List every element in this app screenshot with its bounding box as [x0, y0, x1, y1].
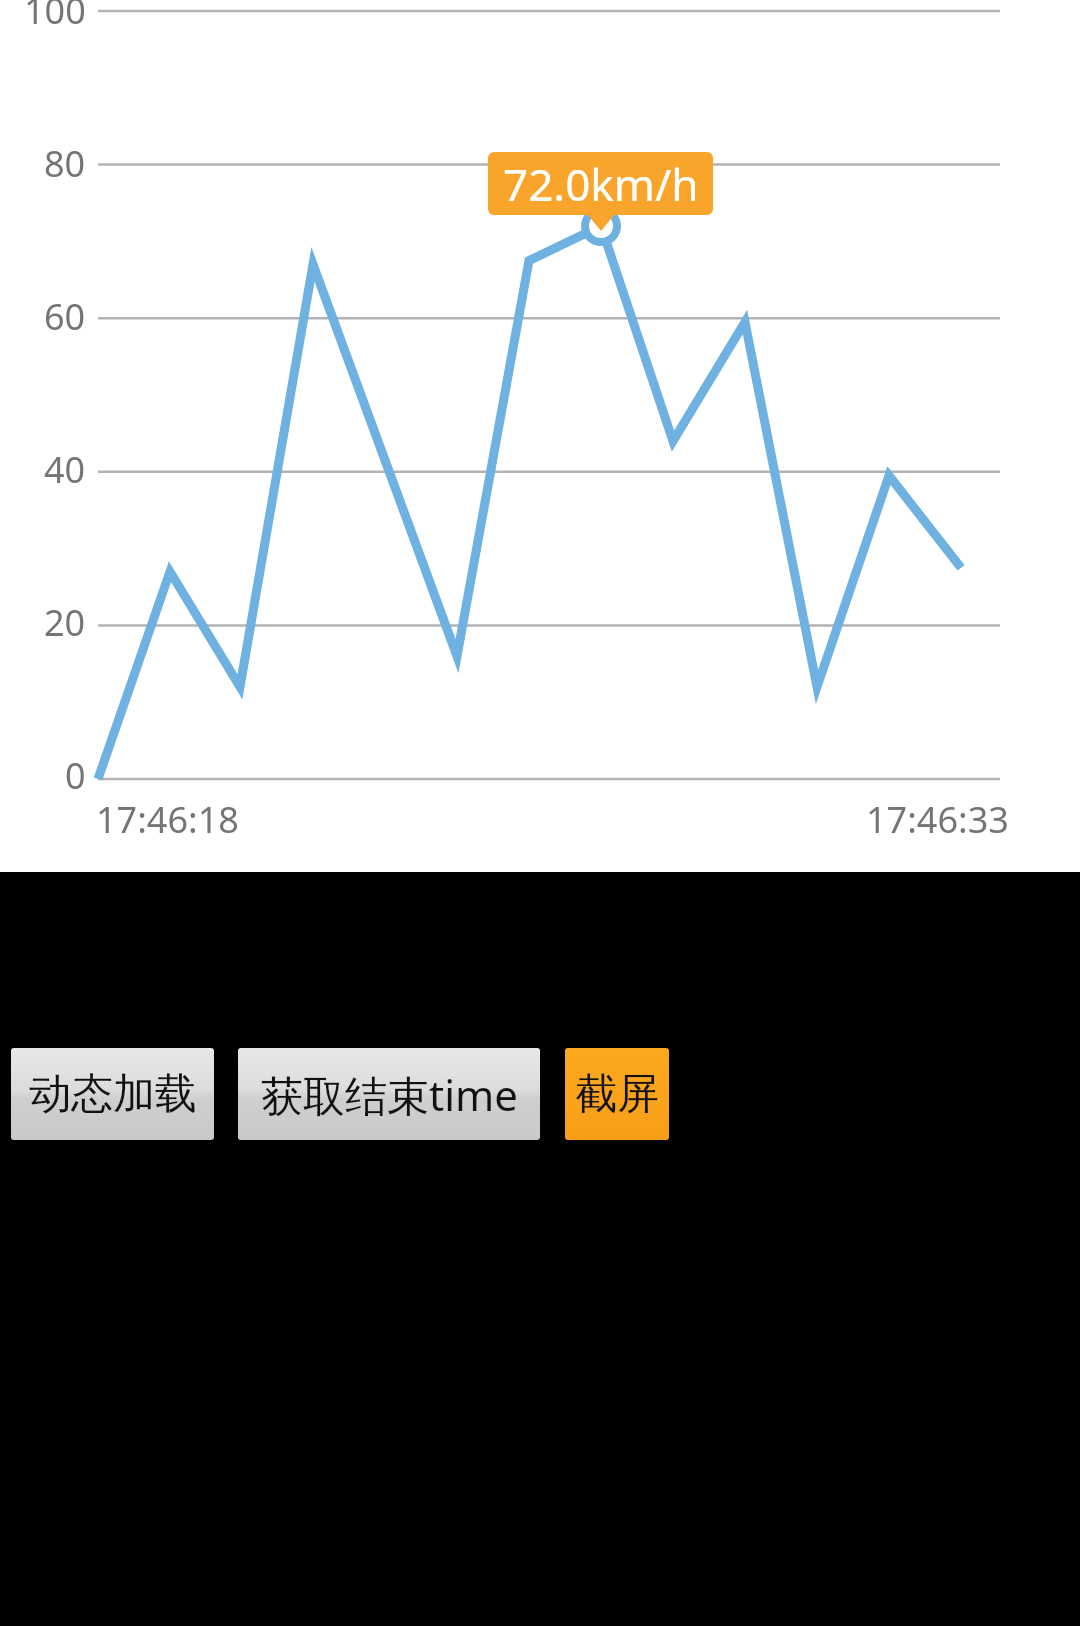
- staticText: 40: [44, 445, 86, 494]
- button[interactable]: 72.0km/h: [488, 152, 713, 215]
- button[interactable]: 截屏: [565, 1048, 669, 1140]
- staticText: 100: [24, 0, 86, 35]
- staticText: 60: [44, 292, 86, 341]
- button[interactable]: 动态加载: [11, 1048, 214, 1140]
- staticText: 截屏: [575, 1068, 659, 1121]
- staticText: 动态加载: [29, 1068, 197, 1121]
- staticText: 80: [44, 139, 86, 188]
- staticText: 20: [44, 598, 86, 647]
- staticText: 72.0km/h: [503, 154, 699, 214]
- button[interactable]: 获取结束time: [238, 1048, 540, 1140]
- staticText: 17:46:33: [866, 795, 1009, 844]
- staticText: 17:46:18: [96, 795, 239, 844]
- staticText: 0: [65, 751, 86, 800]
- staticText: 获取结束time: [261, 1066, 518, 1123]
